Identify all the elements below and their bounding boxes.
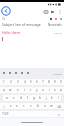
staticText: v xyxy=(30,104,32,108)
button[interactable]: m xyxy=(48,103,55,109)
button[interactable]: Attach xyxy=(42,8,49,15)
staticText: d xyxy=(20,96,22,100)
staticText: g xyxy=(33,96,35,100)
button[interactable]: e xyxy=(14,87,21,93)
staticText: . xyxy=(50,112,51,116)
staticText: t xyxy=(30,88,32,92)
staticText: 3 xyxy=(17,80,19,84)
staticText: ⌫ xyxy=(57,105,62,108)
staticText: x xyxy=(16,104,18,108)
staticText: 0 xyxy=(60,80,62,84)
button[interactable]: o xyxy=(52,87,58,93)
button[interactable]: z xyxy=(8,103,14,109)
staticText: ↵ xyxy=(58,113,61,116)
button[interactable]: 7 xyxy=(40,79,46,85)
staticText: ⇧ xyxy=(3,105,6,108)
staticText: Subject line of message xyxy=(2,22,41,27)
staticText: o xyxy=(54,88,56,92)
staticText: Hello there xyxy=(2,30,21,35)
button[interactable]: 5 xyxy=(28,79,34,85)
staticText: 7 xyxy=(42,80,44,84)
button[interactable]: x xyxy=(14,103,20,109)
staticText: ?123 xyxy=(2,112,9,116)
button[interactable]: Settings xyxy=(19,70,25,76)
button[interactable]: w xyxy=(7,87,14,93)
button[interactable]: Back xyxy=(1,6,11,16)
button[interactable]: h xyxy=(37,95,43,101)
button[interactable]: d xyxy=(17,95,24,101)
staticText: Numerals xyxy=(48,23,62,27)
button[interactable]: 6 xyxy=(34,79,40,85)
staticText: p xyxy=(60,88,62,92)
staticText: To xyxy=(2,17,6,21)
button[interactable]: t xyxy=(28,87,34,93)
button[interactable]: ?123 xyxy=(0,111,10,117)
button[interactable]: Send xyxy=(49,8,56,15)
staticText: a xyxy=(6,96,8,100)
button[interactable]: c xyxy=(20,103,27,109)
button[interactable]: g xyxy=(31,95,37,101)
button[interactable]: GIF xyxy=(13,70,19,76)
staticText: 1 xyxy=(3,80,5,84)
button[interactable]: ↵ xyxy=(54,111,64,117)
button[interactable]: Translate xyxy=(25,70,31,76)
button[interactable]: r xyxy=(21,87,28,93)
button[interactable]: 2 xyxy=(7,79,14,85)
staticText: r xyxy=(24,88,26,92)
staticText: 8 xyxy=(48,80,50,84)
staticText: i xyxy=(49,88,50,92)
button[interactable]: y xyxy=(34,87,40,93)
button[interactable]: f xyxy=(24,95,31,101)
staticText: Settings xyxy=(53,72,63,75)
staticText: 4 xyxy=(24,80,26,84)
staticText: 6 xyxy=(36,80,38,84)
staticText: b xyxy=(37,104,39,108)
staticText: u xyxy=(42,88,44,92)
button[interactable]: ⇧ xyxy=(0,103,8,109)
staticText: z xyxy=(10,104,12,108)
button[interactable]: v xyxy=(27,103,34,109)
button[interactable]: More options xyxy=(56,8,63,15)
button[interactable]: j xyxy=(43,95,49,101)
staticText: a b c d xyxy=(54,31,62,34)
button[interactable]: 9 xyxy=(52,79,58,85)
staticText: e xyxy=(17,88,19,92)
button[interactable]: l xyxy=(55,95,61,101)
staticText: w xyxy=(9,88,12,92)
staticText: l xyxy=(58,96,59,100)
button[interactable]: k xyxy=(49,95,55,101)
staticText: 2 xyxy=(10,80,12,84)
button[interactable]: 0 xyxy=(58,79,64,85)
staticText: c xyxy=(23,104,25,108)
button[interactable]: b xyxy=(34,103,41,109)
button[interactable]: . xyxy=(47,111,54,117)
button[interactable]: i xyxy=(46,87,52,93)
staticText: m xyxy=(50,104,53,108)
staticText: n xyxy=(44,104,46,108)
button[interactable]: u xyxy=(40,87,46,93)
staticText: q xyxy=(3,88,5,92)
button[interactable]: s xyxy=(10,95,17,101)
button[interactable]: Emoji xyxy=(1,70,7,76)
button[interactable]: a xyxy=(3,95,10,101)
button[interactable]: 8 xyxy=(46,79,52,85)
staticText: s xyxy=(13,96,15,100)
button[interactable]: p xyxy=(58,87,64,93)
button[interactable]: Clipboard xyxy=(7,70,13,76)
staticText: , xyxy=(13,112,14,116)
staticText: y xyxy=(36,88,38,92)
button[interactable]: ⌫ xyxy=(55,103,64,109)
button[interactable]: 3 xyxy=(14,79,21,85)
button[interactable]: q xyxy=(0,87,7,93)
staticText: k xyxy=(51,96,53,100)
button[interactable]: 1 xyxy=(0,79,7,85)
staticText: f xyxy=(27,96,29,100)
button[interactable]: 4 xyxy=(21,79,28,85)
button[interactable]: , xyxy=(10,111,17,117)
staticText: 5 xyxy=(30,80,32,84)
staticText: 9 xyxy=(54,80,56,84)
staticText: h xyxy=(39,96,41,100)
staticText: j xyxy=(46,96,47,100)
button[interactable]: n xyxy=(41,103,48,109)
